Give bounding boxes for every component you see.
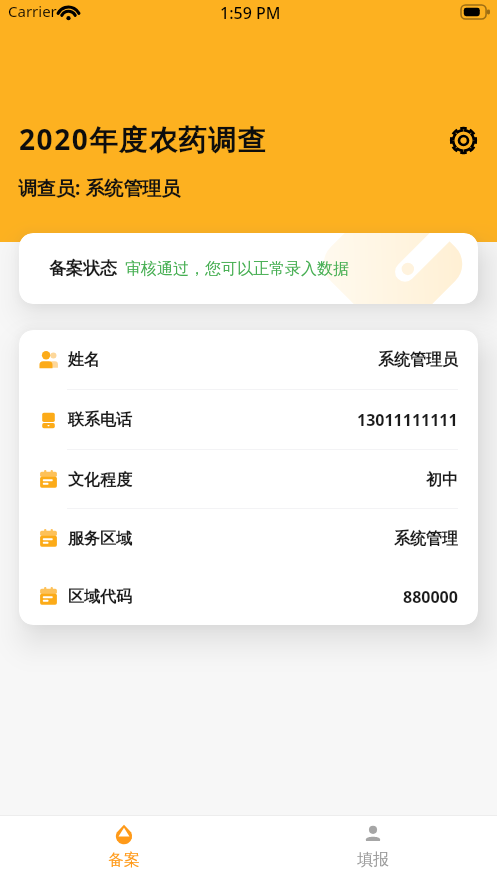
button[interactable]: 备案状态 <box>19 233 478 304</box>
staticText: 调查员: 系统管理员 <box>18 175 181 201</box>
staticText: 备案 <box>108 850 140 870</box>
button[interactable]: 联系电话 <box>19 390 478 450</box>
staticText: 初中 <box>426 470 458 490</box>
staticText: 系统管理 <box>394 529 458 549</box>
staticText: 服务区域 <box>68 529 132 549</box>
staticText: 联系电话 <box>68 410 132 430</box>
staticText: Carrier <box>8 1 57 21</box>
button[interactable]: 服务区域 <box>19 509 478 568</box>
staticText: 系统管理员 <box>378 350 458 370</box>
staticText: 区域代码 <box>68 587 132 607</box>
staticText: 备案状态 <box>49 258 117 279</box>
staticText: 姓名 <box>68 350 100 370</box>
button[interactable]: 填报 <box>248 816 497 883</box>
staticText: 1:59 PM <box>220 2 281 24</box>
button[interactable]: Settings <box>446 123 480 157</box>
button[interactable]: 区域代码 <box>19 568 478 625</box>
staticText: 填报 <box>357 850 389 870</box>
staticText: 2020年度农药调查 <box>19 120 268 158</box>
staticText: 13011111111 <box>357 409 458 431</box>
staticText: 审核通过，您可以正常录入数据 <box>125 259 349 279</box>
button[interactable]: 备案 <box>0 816 248 883</box>
staticText: 880000 <box>403 586 458 608</box>
staticText: 文化程度 <box>68 470 132 490</box>
button[interactable]: 姓名 <box>19 330 478 390</box>
button[interactable]: 文化程度 <box>19 450 478 509</box>
